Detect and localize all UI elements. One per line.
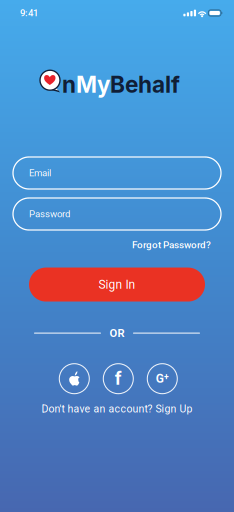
staticText: Behalf [110, 71, 180, 98]
staticText: Forgot Password? [132, 239, 211, 251]
staticText: Email [29, 167, 51, 179]
staticText: 9:41 [20, 7, 38, 19]
staticText: OR [109, 327, 124, 340]
button[interactable]: Sign in with Apple [59, 364, 89, 394]
button[interactable]: Password [13, 198, 221, 230]
staticText: + [164, 372, 169, 382]
button[interactable]: Sign in with Google [147, 364, 177, 394]
staticText: Sign In [98, 277, 135, 292]
button[interactable]: Sign in with Facebook [103, 364, 133, 394]
button[interactable]: Email [13, 157, 221, 189]
staticText: f [115, 368, 122, 389]
button[interactable]: Sign In [29, 268, 205, 302]
staticText: n [62, 71, 76, 98]
staticText: Don't have an account? Sign Up [41, 403, 192, 415]
staticText: G [156, 372, 164, 386]
staticText: My [76, 71, 110, 98]
button[interactable]: Forgot Password? [132, 239, 211, 251]
staticText: Password [29, 208, 70, 220]
button[interactable]: Don't have an account? Sign Up [41, 403, 192, 415]
